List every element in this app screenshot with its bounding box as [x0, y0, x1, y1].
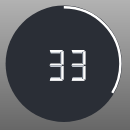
- button[interactable]: Timer 33 seconds: [0, 0, 130, 130]
